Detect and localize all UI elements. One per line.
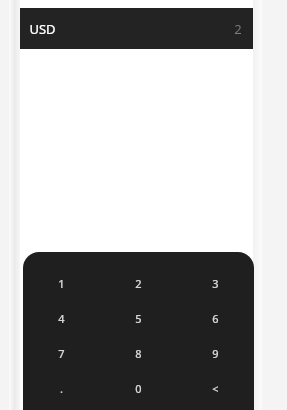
button[interactable]: USD [20, 8, 253, 49]
button[interactable]: Decimal point [23, 371, 100, 406]
staticText: 6 [212, 311, 219, 326]
button[interactable]: 6 [177, 301, 254, 336]
button[interactable]: 0 [100, 371, 177, 406]
button[interactable]: 7 [23, 336, 100, 371]
staticText: 7 [58, 346, 65, 361]
button[interactable]: 8 [100, 336, 177, 371]
staticText: 3 [212, 276, 219, 291]
staticText: . [60, 381, 63, 396]
staticText: 5 [135, 311, 142, 326]
staticText: 0 [135, 381, 142, 396]
staticText: 2 [135, 276, 142, 291]
button[interactable]: 9 [177, 336, 254, 371]
staticText: < [212, 381, 219, 396]
button[interactable]: 1 [23, 266, 100, 301]
button[interactable]: Backspace [177, 371, 254, 406]
staticText: USD [29, 20, 56, 38]
button[interactable]: 4 [23, 301, 100, 336]
staticText: 1 [58, 276, 65, 291]
staticText: 4 [58, 311, 65, 326]
button[interactable]: 5 [100, 301, 177, 336]
button[interactable]: 3 [177, 266, 254, 301]
staticText: 8 [135, 346, 142, 361]
staticText: 2 [234, 20, 242, 38]
button[interactable]: 2 [100, 266, 177, 301]
staticText: 9 [212, 346, 219, 361]
